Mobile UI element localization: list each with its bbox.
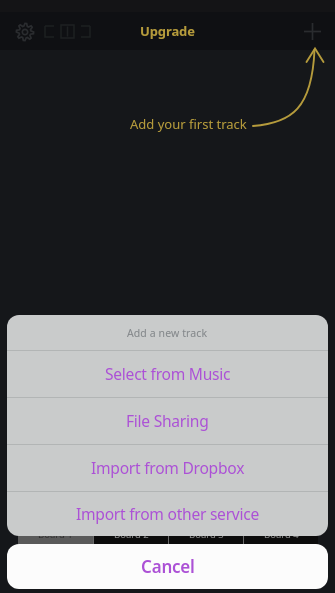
staticText: Select from Music xyxy=(105,363,231,384)
staticText: Add your first track xyxy=(130,115,247,133)
button[interactable]: Board 3 xyxy=(169,524,243,544)
staticText: Board 3 xyxy=(189,528,224,541)
staticText: File Sharing xyxy=(126,410,209,431)
staticText: Add a new track xyxy=(127,326,208,340)
button[interactable]: Board 2 xyxy=(94,524,168,544)
staticText: Import from Dropbox xyxy=(91,457,245,478)
button[interactable]: Import from other service xyxy=(7,491,328,536)
staticText: Import from other service xyxy=(76,503,259,524)
button[interactable]: File Sharing xyxy=(7,397,328,444)
button[interactable]: Rewind xyxy=(41,23,58,40)
button[interactable]: Board 1 xyxy=(18,524,93,544)
staticText: Board 1 xyxy=(38,528,73,541)
staticText: Board 2 xyxy=(114,528,149,541)
button[interactable]: Upgrade xyxy=(140,22,195,40)
button[interactable]: Add track xyxy=(296,15,329,48)
button[interactable]: Forward xyxy=(77,23,94,40)
staticText: Cancel xyxy=(141,555,195,578)
staticText: Board 4 xyxy=(264,528,299,541)
button[interactable]: Cancel xyxy=(7,544,328,589)
button[interactable]: Settings xyxy=(8,15,41,48)
button[interactable]: Metronome xyxy=(59,23,76,40)
button[interactable]: Board 4 xyxy=(244,524,318,544)
button[interactable]: Select from Music xyxy=(7,350,328,397)
button[interactable]: Import from Dropbox xyxy=(7,444,328,491)
